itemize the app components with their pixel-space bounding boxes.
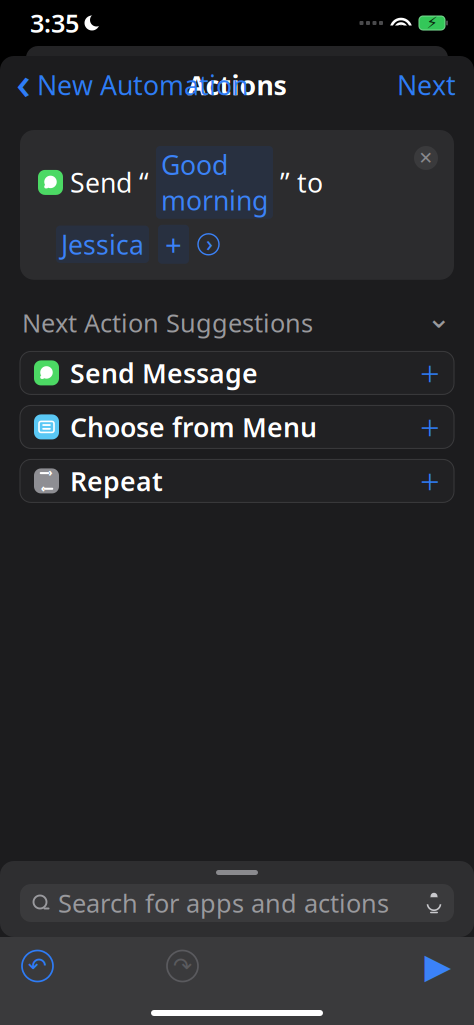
staticText: Repeat: [70, 463, 163, 499]
staticText: ✕: [418, 148, 433, 168]
button[interactable]: Good morning: [156, 146, 273, 219]
staticText: Choose from Menu: [70, 409, 317, 445]
button[interactable]: Undo: [22, 950, 53, 981]
staticText: New Automation: [37, 67, 248, 103]
staticText: ↷: [173, 953, 192, 979]
staticText: ›: [48, 465, 52, 479]
staticText: to: [297, 165, 323, 200]
staticText: +: [420, 350, 440, 396]
button[interactable]: Choose from Menu: [20, 405, 454, 448]
staticText: ‹: [41, 481, 45, 495]
button[interactable]: Show more: [198, 234, 219, 255]
staticText: ›: [206, 229, 213, 257]
staticText: Actions: [187, 67, 286, 103]
staticText: Search for apps and actions: [58, 886, 389, 920]
staticText: Next: [397, 67, 456, 103]
staticText: +: [420, 404, 440, 450]
staticText: Jessica: [61, 227, 144, 262]
button[interactable]: Redo: [167, 950, 198, 981]
staticText: ↶: [28, 953, 47, 979]
staticText: Send: [70, 165, 132, 200]
button[interactable]: Add recipient: [158, 225, 189, 264]
staticText: 3:35: [30, 6, 79, 40]
staticText: “: [139, 165, 149, 200]
staticText: ”: [280, 165, 290, 200]
staticText: +: [165, 225, 182, 264]
button[interactable]: Send Message: [20, 351, 454, 394]
staticText: Good morning: [161, 147, 268, 218]
staticText: Next Action Suggestions: [22, 306, 313, 339]
button[interactable]: Next: [397, 61, 474, 109]
staticText: ⌄: [426, 301, 451, 334]
staticText: +: [420, 458, 440, 504]
staticText: ▶: [424, 946, 451, 986]
button[interactable]: ‹: [0, 49, 248, 121]
staticText: ‹: [16, 52, 31, 112]
button[interactable]: Remove action: [414, 146, 438, 170]
button[interactable]: Run shortcut: [426, 952, 450, 979]
button[interactable]: ›: [20, 459, 454, 502]
staticText: Send Message: [70, 355, 258, 391]
button[interactable]: Collapse suggestions: [426, 310, 452, 336]
button[interactable]: Search for apps and actions: [20, 884, 454, 922]
button[interactable]: Jessica: [56, 226, 149, 263]
staticText: ⚡︎: [426, 14, 437, 32]
